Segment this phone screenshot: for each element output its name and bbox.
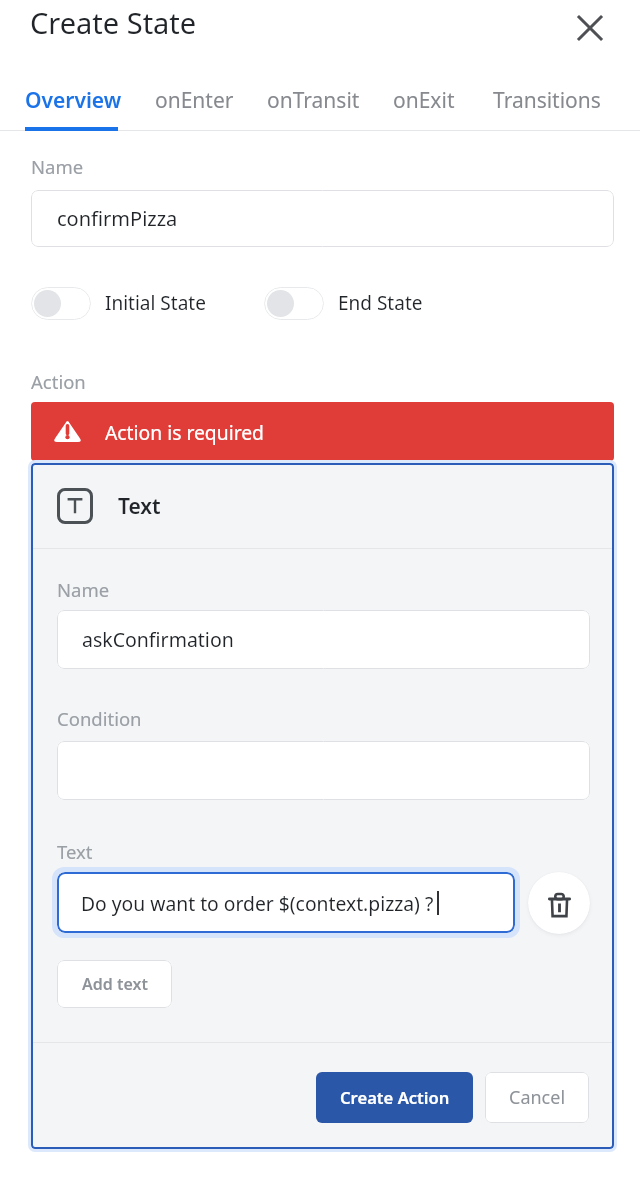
button[interactable]: Action is required bbox=[31, 402, 614, 461]
button[interactable] bbox=[57, 741, 590, 800]
button[interactable]: onEnter bbox=[143, 78, 246, 122]
button[interactable]: Create Action bbox=[316, 1072, 473, 1123]
staticText: Cancel bbox=[509, 1085, 566, 1110]
staticText: Name bbox=[31, 154, 84, 179]
staticText: Create Action bbox=[340, 1086, 450, 1109]
staticText: Text bbox=[118, 492, 161, 521]
button[interactable]: onTransit bbox=[255, 78, 372, 122]
staticText: End State bbox=[338, 290, 423, 316]
button[interactable]: Close bbox=[566, 4, 614, 52]
button[interactable]: onExit bbox=[381, 78, 467, 122]
staticText: Condition bbox=[57, 706, 142, 731]
button[interactable]: End State bbox=[264, 287, 423, 320]
staticText: Add text bbox=[82, 973, 148, 995]
button[interactable]: Transitions bbox=[481, 78, 613, 122]
staticText: Initial State bbox=[105, 290, 206, 316]
button[interactable]: Overview bbox=[13, 78, 134, 122]
button[interactable]: askConfirmation bbox=[57, 610, 590, 669]
staticText: Overview bbox=[25, 86, 122, 115]
staticText: onExit bbox=[393, 86, 455, 115]
staticText: Create State bbox=[30, 3, 197, 42]
button[interactable]: Add text bbox=[57, 960, 172, 1008]
staticText: askConfirmation bbox=[82, 626, 234, 653]
staticText: Name bbox=[57, 577, 110, 602]
staticText: Transitions bbox=[493, 86, 601, 115]
button[interactable]: confirmPizza bbox=[31, 190, 614, 247]
button[interactable]: Initial State bbox=[31, 287, 206, 320]
button[interactable]: Delete bbox=[528, 872, 590, 934]
button[interactable]: Text bbox=[31, 463, 614, 549]
staticText: Text bbox=[57, 839, 93, 864]
button[interactable]: Do you want to order $(context.pizza) ? bbox=[57, 872, 515, 933]
staticText: Do you want to order $(context.pizza) ? bbox=[81, 890, 434, 916]
staticText: onTransit bbox=[267, 86, 360, 115]
button[interactable]: Cancel bbox=[485, 1072, 589, 1123]
staticText: confirmPizza bbox=[57, 205, 178, 232]
staticText: Action bbox=[31, 369, 86, 394]
staticText: onEnter bbox=[155, 86, 234, 115]
staticText: Action is required bbox=[105, 419, 264, 445]
